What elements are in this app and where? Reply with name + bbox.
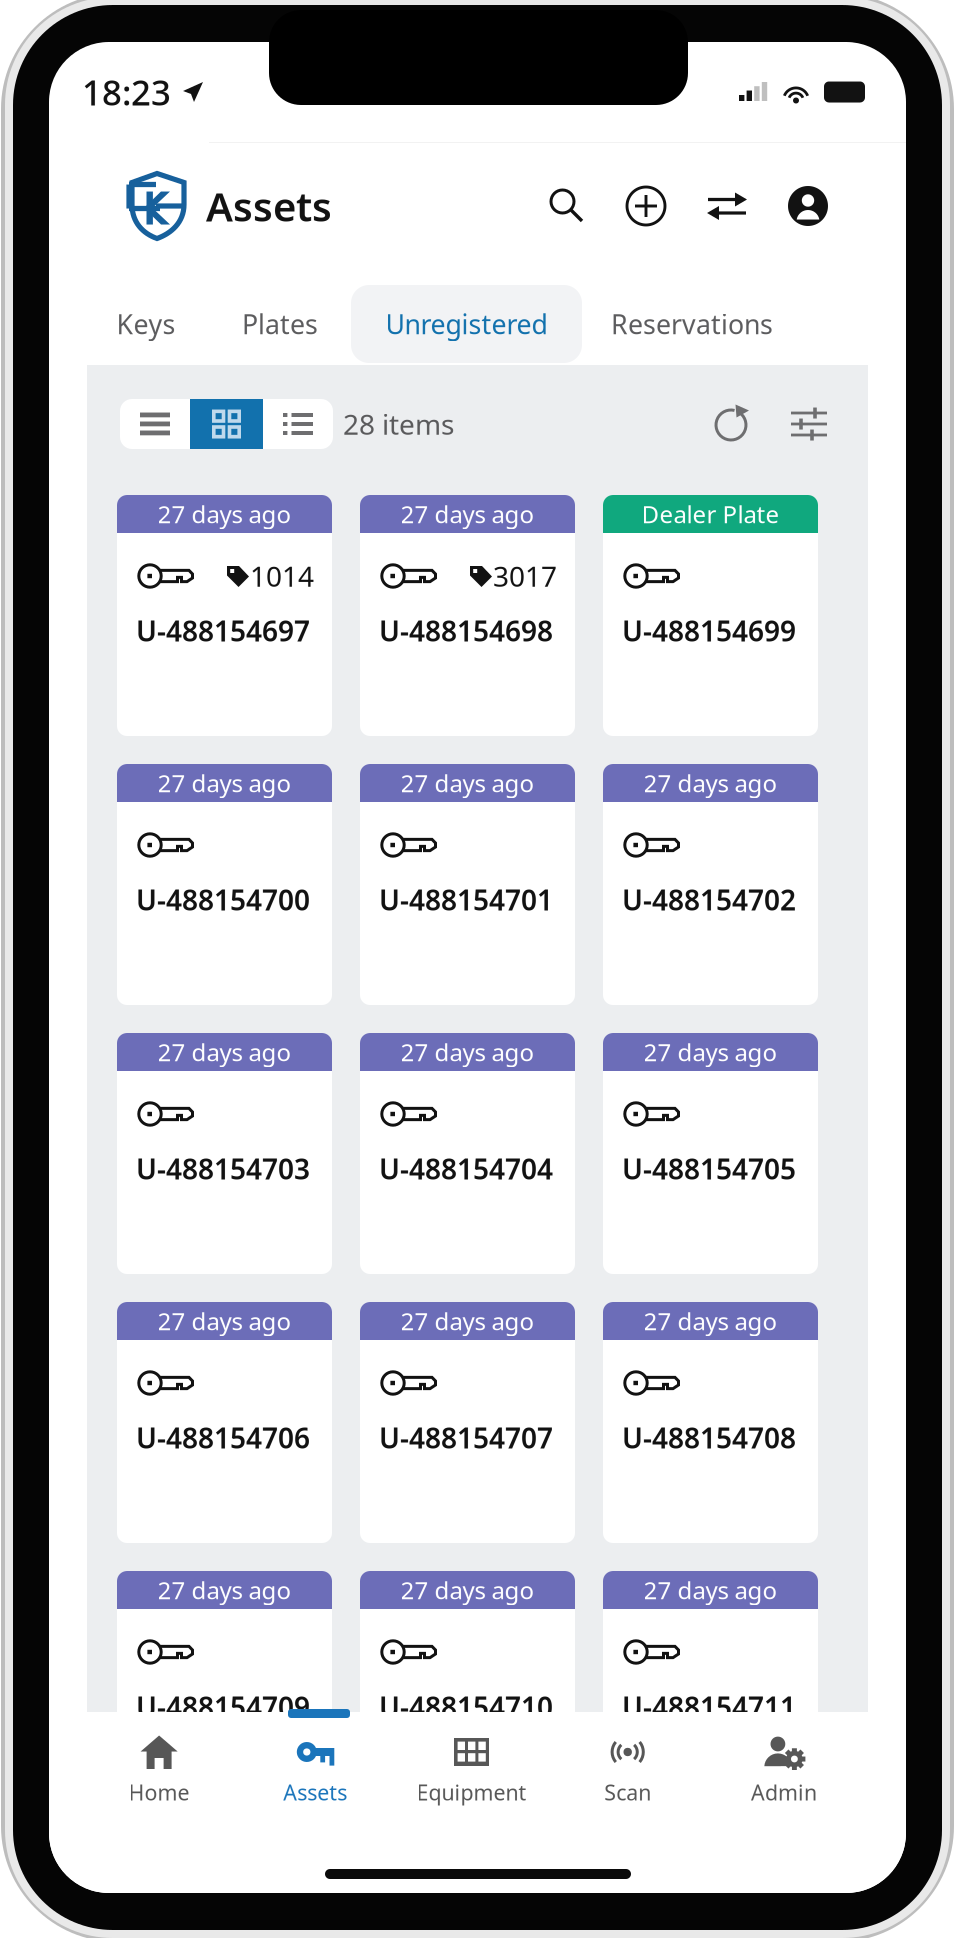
button[interactable]: Scan: [550, 1733, 706, 1827]
button[interactable]: Reservations: [582, 285, 802, 363]
staticText: U-488154698: [379, 612, 553, 649]
staticText: 27 days ago: [400, 1305, 534, 1337]
staticText: U-488154703: [136, 1150, 310, 1187]
button[interactable]: Transfer: [706, 189, 748, 223]
staticText: 27 days ago: [400, 1574, 534, 1606]
button[interactable]: 27 days ago: [117, 495, 332, 736]
button[interactable]: Filter: [790, 405, 828, 443]
staticText: 27 days ago: [643, 1036, 777, 1068]
staticText: 27 days ago: [400, 498, 534, 530]
button[interactable]: Detail view: [263, 399, 333, 449]
staticText: U-488154700: [136, 881, 310, 918]
staticText: Admin: [751, 1778, 817, 1806]
button[interactable]: 27 days ago: [360, 1571, 575, 1812]
staticText: 3017: [493, 557, 557, 595]
button[interactable]: 27 days ago: [360, 764, 575, 1005]
button[interactable]: 27 days ago: [117, 1033, 332, 1274]
button[interactable]: Account: [787, 185, 829, 227]
button[interactable]: 27 days ago: [117, 764, 332, 1005]
staticText: U-488154702: [622, 881, 796, 918]
staticText: 27 days ago: [157, 498, 291, 530]
staticText: Scan: [604, 1778, 651, 1806]
button[interactable]: Keys: [83, 285, 209, 363]
button[interactable]: Assets: [237, 1733, 393, 1827]
button[interactable]: Search: [548, 187, 586, 225]
staticText: 27 days ago: [157, 767, 291, 799]
staticText: 27 days ago: [157, 1305, 291, 1337]
button[interactable]: Plates: [209, 285, 351, 363]
staticText: Plates: [242, 306, 318, 342]
button[interactable]: Equipment: [393, 1733, 550, 1827]
staticText: U-488154697: [136, 612, 310, 649]
button[interactable]: 27 days ago: [603, 1302, 818, 1543]
staticText: U-488154704: [379, 1150, 553, 1187]
button[interactable]: 27 days ago: [360, 1302, 575, 1543]
staticText: Reservations: [611, 306, 773, 342]
button[interactable]: Refresh: [712, 404, 752, 444]
button[interactable]: Grid view: [190, 399, 263, 449]
staticText: 27 days ago: [643, 1574, 777, 1606]
staticText: U-488154710: [379, 1688, 553, 1725]
button[interactable]: 27 days ago: [603, 764, 818, 1005]
staticText: 27 days ago: [400, 767, 534, 799]
staticText: U-488154705: [622, 1150, 796, 1187]
staticText: U-488154709: [136, 1688, 310, 1725]
button[interactable]: 27 days ago: [360, 495, 575, 736]
button[interactable]: Admin: [706, 1733, 862, 1827]
staticText: Home: [129, 1778, 190, 1806]
staticText: 18:23: [82, 69, 171, 115]
button[interactable]: Add: [625, 185, 667, 227]
staticText: 28 items: [343, 405, 454, 443]
staticText: 27 days ago: [643, 767, 777, 799]
staticText: Assets: [206, 179, 332, 232]
staticText: Dealer Plate: [641, 498, 779, 530]
staticText: U-488154708: [622, 1419, 796, 1456]
staticText: U-488154706: [136, 1419, 310, 1456]
button[interactable]: List view: [120, 399, 190, 449]
button[interactable]: 27 days ago: [603, 1033, 818, 1274]
button[interactable]: 27 days ago: [360, 1033, 575, 1274]
staticText: Keys: [116, 306, 175, 342]
staticText: 27 days ago: [643, 1305, 777, 1337]
button[interactable]: 27 days ago: [603, 1571, 818, 1812]
staticText: 1014: [250, 557, 314, 595]
staticText: 27 days ago: [157, 1574, 291, 1606]
staticText: U-488154699: [622, 612, 796, 649]
staticText: 27 days ago: [157, 1036, 291, 1068]
button[interactable]: Assets: [126, 168, 340, 243]
staticText: U-488154701: [379, 881, 553, 918]
staticText: U-488154711: [622, 1688, 796, 1725]
staticText: Unregistered: [385, 306, 547, 342]
staticText: U-488154707: [379, 1419, 553, 1456]
staticText: Equipment: [416, 1778, 526, 1806]
staticText: Assets: [283, 1778, 347, 1806]
staticText: 27 days ago: [400, 1036, 534, 1068]
button[interactable]: 27 days ago: [117, 1571, 332, 1812]
button[interactable]: Home: [81, 1733, 237, 1827]
button[interactable]: Dealer Plate: [603, 495, 818, 736]
button[interactable]: 27 days ago: [117, 1302, 332, 1543]
button[interactable]: Unregistered: [351, 285, 582, 363]
